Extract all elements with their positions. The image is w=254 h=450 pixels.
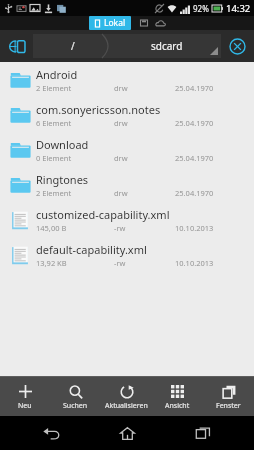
button[interactable]: Download <box>0 132 254 167</box>
button[interactable]: Lokal <box>89 16 131 30</box>
staticText: customized-capability.xml <box>36 207 170 222</box>
staticText: 0 Element <box>36 153 72 163</box>
staticText: com.sonyericsson.notes <box>36 102 161 117</box>
button[interactable]: Geräte <box>139 18 149 28</box>
button[interactable]: Lesezeichen <box>4 33 30 59</box>
button[interactable]: Neu <box>0 380 50 413</box>
button[interactable]: Startseite <box>102 416 152 450</box>
button[interactable]: Übersicht <box>178 416 228 450</box>
staticText: 13,92 KB <box>36 258 67 268</box>
staticText: Download <box>36 137 89 152</box>
staticText: drw <box>114 118 128 128</box>
button[interactable]: sdcard <box>112 34 221 58</box>
staticText: sdcard <box>151 39 183 53</box>
staticText: 25.04.1970 <box>175 118 214 128</box>
staticText: 145,00 B <box>36 223 67 233</box>
staticText: 6 Element <box>36 118 72 128</box>
button[interactable]: / <box>33 34 112 58</box>
button[interactable]: Android <box>0 62 254 97</box>
button[interactable]: com.sonyericsson.notes <box>0 97 254 132</box>
staticText: Ansicht <box>165 401 190 411</box>
button[interactable]: default-capability.xml <box>0 237 254 272</box>
staticText: Lokal <box>104 17 126 29</box>
staticText: / <box>71 39 75 53</box>
staticText: Fenster <box>216 401 241 411</box>
button[interactable]: Aktualisieren <box>101 380 152 413</box>
staticText: 25.04.1970 <box>175 188 214 198</box>
button[interactable]: Zurück <box>26 416 76 450</box>
staticText: 14:32 <box>226 2 251 15</box>
staticText: Aktualisieren <box>105 401 148 411</box>
staticText: drw <box>114 83 128 93</box>
staticText: -rw <box>114 258 126 268</box>
staticText: 10.10.2013 <box>175 258 214 268</box>
staticText: 10.10.2013 <box>175 223 214 233</box>
staticText: Android <box>36 67 78 82</box>
button[interactable]: Ansicht <box>152 380 203 413</box>
staticText: Neu <box>18 401 32 411</box>
staticText: Suchen <box>63 401 88 411</box>
staticText: 2 Element <box>36 83 72 93</box>
staticText: Ringtones <box>36 172 89 187</box>
button[interactable]: Suchen <box>50 380 101 413</box>
staticText: drw <box>114 153 128 163</box>
staticText: 25.04.1970 <box>175 83 214 93</box>
staticText: 92% <box>193 3 209 14</box>
staticText: drw <box>114 188 128 198</box>
staticText: 25.04.1970 <box>175 153 214 163</box>
staticText: -rw <box>114 223 126 233</box>
button[interactable]: customized-capability.xml <box>0 202 254 237</box>
button[interactable]: Fenster <box>203 380 254 413</box>
button[interactable]: Cloud <box>155 18 166 29</box>
button[interactable]: Schließen <box>224 33 250 59</box>
staticText: default-capability.xml <box>36 242 147 257</box>
button[interactable]: Ringtones <box>0 167 254 202</box>
staticText: 2 Element <box>36 188 72 198</box>
